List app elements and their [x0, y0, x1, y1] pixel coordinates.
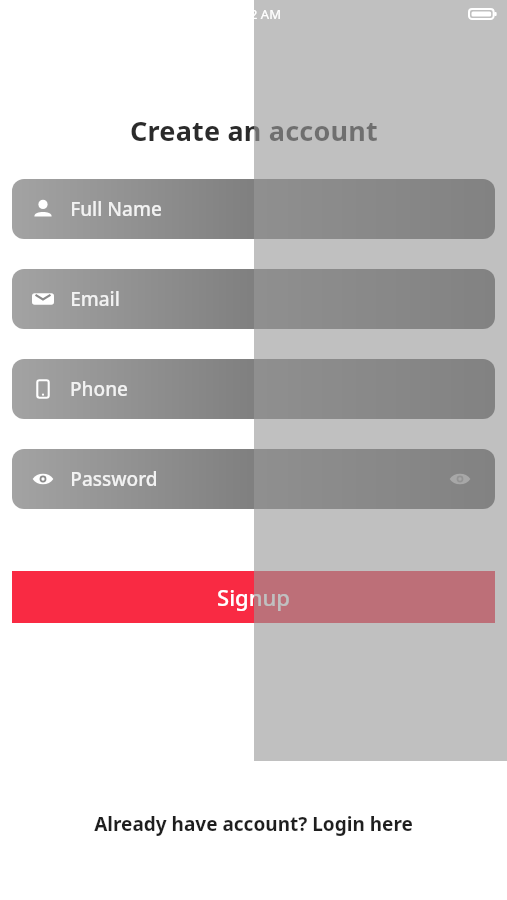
button[interactable]: Already have account? Login here — [0, 811, 507, 837]
staticText: Email — [70, 286, 120, 312]
staticText: Already have account? Login here — [94, 811, 413, 837]
staticText: Full Name — [70, 196, 162, 222]
button[interactable]: Signup — [12, 571, 495, 623]
button[interactable]: Full Name — [12, 179, 495, 239]
staticText: 2 AM — [250, 5, 281, 23]
button[interactable]: Show password — [445, 464, 475, 494]
button[interactable]: Email — [12, 269, 495, 329]
staticText: Password — [70, 466, 158, 492]
staticText: Create an account — [130, 112, 378, 149]
button[interactable]: Phone — [12, 359, 495, 419]
staticText: Signup — [217, 582, 290, 612]
button[interactable]: Password — [12, 449, 495, 509]
staticText: Phone — [70, 376, 128, 402]
